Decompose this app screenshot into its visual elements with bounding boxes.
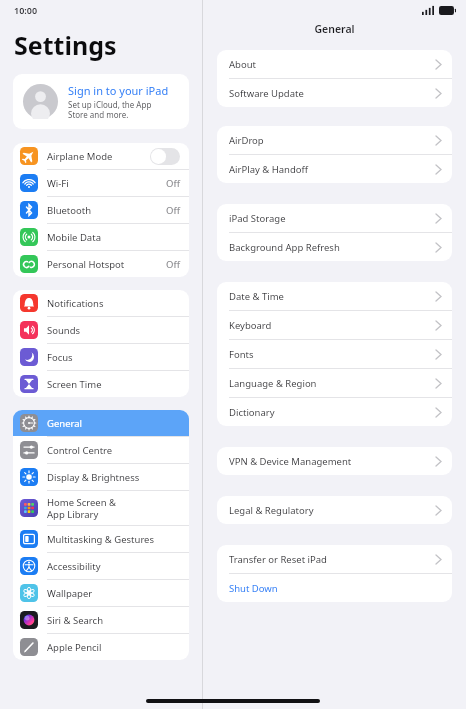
button[interactable]: Multitasking & Gestures [13, 526, 189, 552]
staticText: Wallpaper [47, 587, 180, 600]
staticText: Dictionary [229, 406, 436, 419]
button[interactable]: Notifications [13, 290, 189, 316]
button[interactable]: iPad Storage [217, 204, 452, 232]
button[interactable]: Date & Time [217, 282, 452, 310]
staticText: Siri & Search [47, 614, 180, 627]
staticText: Software Update [229, 87, 436, 100]
staticText: General [47, 417, 180, 430]
button[interactable]: Legal & Regulatory [217, 496, 452, 524]
button[interactable]: Mobile Data [13, 224, 189, 250]
staticText: Off [166, 204, 180, 217]
button[interactable]: Airplane Mode toggle [150, 148, 180, 165]
staticText: Set up iCloud, the App Store and more. [68, 99, 152, 120]
staticText: Settings [14, 28, 117, 62]
staticText: Multitasking & Gestures [47, 533, 180, 546]
staticText: Mobile Data [47, 231, 180, 244]
button[interactable]: Language & Region [217, 369, 452, 397]
staticText: Shut Down [229, 582, 441, 595]
button[interactable]: Sign in to your iPad [13, 74, 189, 129]
staticText: Sounds [47, 324, 180, 337]
button[interactable]: About [217, 50, 452, 78]
button[interactable]: Shut Down [217, 574, 452, 602]
button[interactable]: Display & Brightness [13, 464, 189, 490]
staticText: Control Centre [47, 444, 180, 457]
button[interactable]: Focus [13, 344, 189, 370]
staticText: Off [166, 258, 180, 271]
staticText: Display & Brightness [47, 471, 180, 484]
button[interactable]: Screen Time [13, 371, 189, 397]
staticText: General [203, 22, 466, 36]
button[interactable]: AirPlay & Handoff [217, 155, 452, 183]
button[interactable]: Fonts [217, 340, 452, 368]
staticText: Date & Time [229, 290, 436, 303]
staticText: iPad Storage [229, 212, 436, 225]
staticText: Fonts [229, 348, 436, 361]
button[interactable]: Airplane Mode [13, 143, 189, 169]
button[interactable]: Software Update [217, 79, 452, 107]
staticText: Focus [47, 351, 180, 364]
staticText: AirPlay & Handoff [229, 163, 436, 176]
button[interactable]: Transfer or Reset iPad [217, 545, 452, 573]
button[interactable]: Control Centre [13, 437, 189, 463]
staticText: About [229, 58, 436, 71]
button[interactable]: Home Screen & App Library [13, 491, 189, 525]
button[interactable]: Sounds [13, 317, 189, 343]
staticText: Screen Time [47, 378, 180, 391]
staticText: Accessibility [47, 560, 180, 573]
staticText: Off [166, 177, 180, 190]
staticText: Notifications [47, 297, 180, 310]
staticText: Home Screen & App Library [47, 496, 180, 520]
staticText: Keyboard [229, 319, 436, 332]
staticText: Airplane Mode [47, 150, 150, 163]
staticText: VPN & Device Management [229, 455, 436, 468]
button[interactable]: Background App Refresh [217, 233, 452, 261]
staticText: 10:00 [14, 4, 38, 16]
button[interactable]: Personal Hotspot [13, 251, 189, 277]
staticText: Apple Pencil [47, 641, 180, 654]
staticText: Background App Refresh [229, 241, 436, 254]
button[interactable]: AirDrop [217, 126, 452, 154]
staticText: Legal & Regulatory [229, 504, 436, 517]
button[interactable]: Keyboard [217, 311, 452, 339]
staticText: Personal Hotspot [47, 258, 166, 271]
button[interactable]: Wi-Fi [13, 170, 189, 196]
button[interactable]: General [13, 410, 189, 436]
staticText: Language & Region [229, 377, 436, 390]
button[interactable]: VPN & Device Management [217, 447, 452, 475]
staticText: AirDrop [229, 134, 436, 147]
staticText: Wi-Fi [47, 177, 166, 190]
button[interactable]: Bluetooth [13, 197, 189, 223]
button[interactable]: Siri & Search [13, 607, 189, 633]
button[interactable]: Dictionary [217, 398, 452, 426]
staticText: Bluetooth [47, 204, 166, 217]
button[interactable]: Accessibility [13, 553, 189, 579]
button[interactable]: Apple Pencil [13, 634, 189, 660]
staticText: Transfer or Reset iPad [229, 553, 436, 566]
button[interactable]: Wallpaper [13, 580, 189, 606]
staticText: Sign in to your iPad [68, 83, 169, 98]
